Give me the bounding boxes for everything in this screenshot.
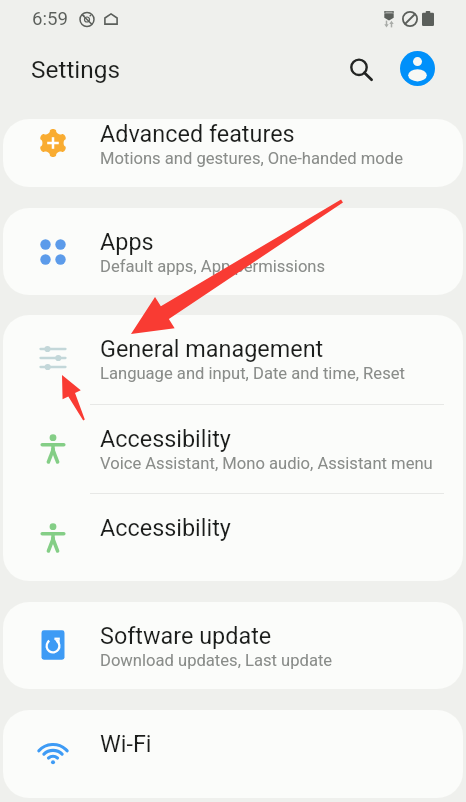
button[interactable]: Accessibility xyxy=(3,494,463,581)
staticText: Software update xyxy=(100,622,272,649)
staticText: Apps xyxy=(100,228,154,255)
staticText: Default apps, App permissions xyxy=(100,257,326,276)
button[interactable]: Account xyxy=(400,51,435,86)
staticText: Wi-Fi xyxy=(100,730,152,757)
button[interactable]: Apps xyxy=(3,208,463,295)
staticText: General management xyxy=(100,335,324,362)
staticText: Advanced features xyxy=(100,120,295,147)
button[interactable]: Accessibility xyxy=(3,405,463,493)
button[interactable]: General management xyxy=(3,315,463,404)
staticText: 6:59 xyxy=(32,8,69,30)
staticText: Voice Assistant, Mono audio, Assistant m… xyxy=(100,454,433,473)
staticText: Language and input, Date and time, Reset xyxy=(100,364,405,383)
button[interactable]: Search xyxy=(339,44,383,88)
button[interactable]: Software update xyxy=(3,602,463,689)
button[interactable]: Advanced features xyxy=(3,119,463,187)
staticText: Motions and gestures, One-handed mode xyxy=(100,149,403,168)
button[interactable]: Wi-Fi xyxy=(3,710,463,798)
staticText: Settings xyxy=(31,55,121,84)
staticText: Accessibility xyxy=(100,425,231,452)
staticText: Download updates, Last update xyxy=(100,651,333,670)
staticText: Accessibility xyxy=(100,514,231,541)
